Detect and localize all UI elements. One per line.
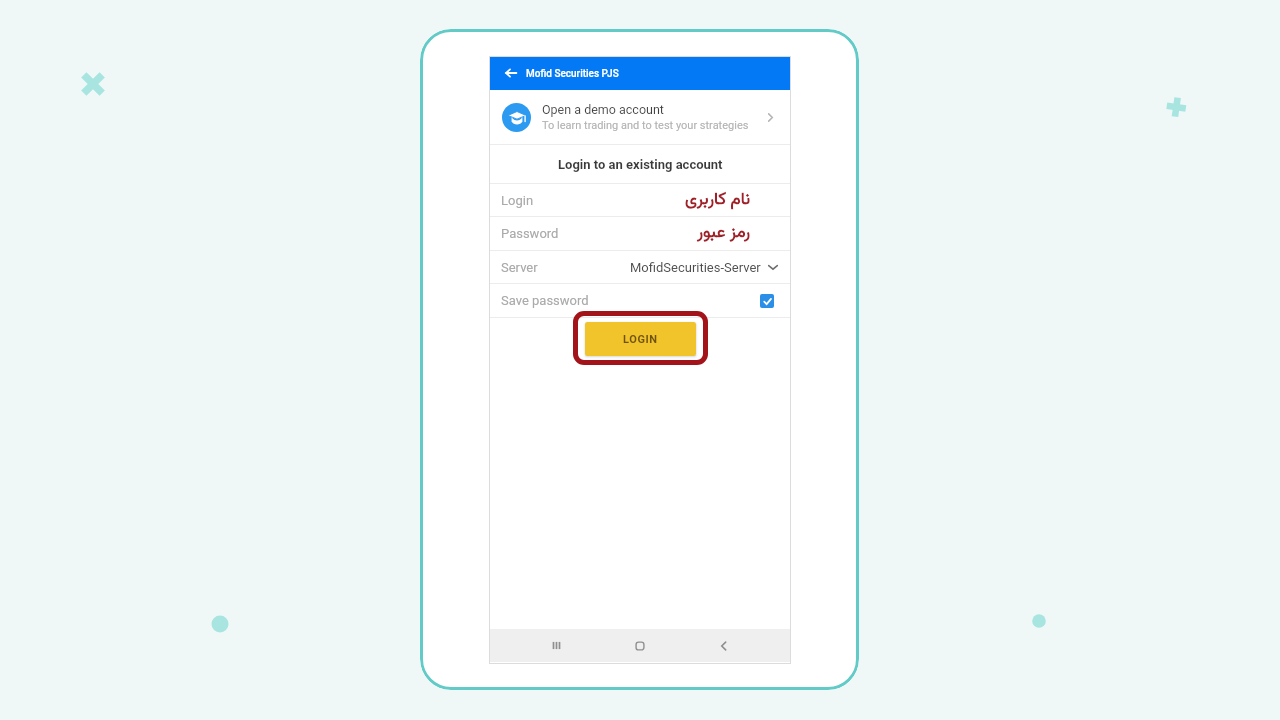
staticText: Save password bbox=[501, 293, 589, 308]
button[interactable]: Password bbox=[490, 217, 790, 250]
button[interactable]: Back bbox=[490, 57, 526, 90]
staticText: Password bbox=[501, 226, 559, 241]
button[interactable]: Recent apps bbox=[514, 629, 598, 662]
staticText: Server bbox=[501, 260, 538, 275]
staticText: Login to an existing account bbox=[558, 157, 723, 172]
staticText: نام کاربری bbox=[685, 187, 750, 214]
button[interactable]: Server bbox=[490, 251, 790, 283]
staticText: Login bbox=[501, 193, 534, 208]
staticText: MofidSecurities-Server bbox=[630, 260, 761, 275]
button[interactable]: Save password bbox=[490, 284, 790, 317]
staticText: Open a demo account bbox=[542, 102, 664, 117]
staticText: LOGIN bbox=[623, 333, 658, 346]
button[interactable]: Login bbox=[490, 184, 790, 216]
button[interactable]: Back bbox=[682, 629, 766, 662]
button[interactable]: Open a demo account bbox=[490, 90, 790, 144]
staticText: رمز عبور bbox=[697, 220, 750, 247]
button[interactable]: LOGIN bbox=[585, 322, 696, 356]
staticText: To learn trading and to test your strate… bbox=[542, 119, 749, 132]
button[interactable]: Home bbox=[598, 629, 682, 662]
staticText: Mofid Securities PJS bbox=[526, 68, 619, 80]
